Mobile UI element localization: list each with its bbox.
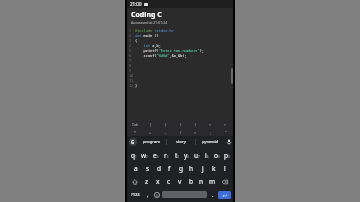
staticText: story <box>176 139 186 145</box>
button[interactable]: ?123 <box>128 188 143 201</box>
staticText: f <box>168 164 171 173</box>
button[interactable]: ) <box>188 120 203 128</box>
staticText: ( <box>180 122 182 127</box>
button[interactable]: pyramid <box>196 136 224 148</box>
button[interactable]: / <box>173 128 188 136</box>
staticText: 5 <box>129 48 132 53</box>
staticText: } <box>135 83 138 88</box>
button[interactable]: story <box>167 136 195 148</box>
staticText: scanf("%d%d",&a,&b); <box>135 53 187 58</box>
staticText: " <box>225 130 227 135</box>
button[interactable]: w2 <box>139 149 150 162</box>
button[interactable]: j <box>197 162 208 175</box>
staticText: / <box>180 130 182 135</box>
button[interactable]: f <box>164 162 175 175</box>
button[interactable]: . <box>208 188 217 201</box>
button[interactable]: Space <box>162 191 207 198</box>
staticText: w2 <box>141 151 148 160</box>
staticText: a <box>134 164 138 173</box>
button[interactable]: t5 <box>172 149 182 162</box>
staticText: program <box>143 139 161 145</box>
staticText: n <box>199 177 204 186</box>
button[interactable]: a <box>130 162 142 175</box>
button[interactable]: , <box>143 188 152 201</box>
button[interactable]: l <box>219 162 230 175</box>
staticText: 21:00 <box>130 1 142 7</box>
button[interactable]: { <box>143 120 158 128</box>
staticText: G <box>131 139 135 145</box>
button[interactable]: Emoji <box>152 188 161 201</box>
staticText: = <box>194 130 197 135</box>
staticText: y6 <box>184 151 190 160</box>
staticText: x <box>156 177 160 186</box>
button[interactable]: z <box>141 175 152 188</box>
staticText: ?123 <box>131 192 140 197</box>
staticText: int a,b; <box>135 43 161 48</box>
staticText: Tab <box>132 122 138 127</box>
staticText: , <box>147 191 149 198</box>
button[interactable]: y6 <box>182 149 192 162</box>
button[interactable]: Backspace <box>218 175 232 188</box>
button[interactable]: e3 <box>150 149 161 162</box>
button[interactable]: * <box>127 128 143 136</box>
button[interactable]: + <box>143 128 158 136</box>
staticText: 12 <box>129 83 134 88</box>
button[interactable]: Enter <box>218 191 231 199</box>
staticText: l <box>224 164 226 173</box>
button[interactable]: - <box>158 128 173 136</box>
button[interactable]: g <box>175 162 186 175</box>
staticText: v <box>178 177 182 186</box>
button[interactable]: b <box>185 175 196 188</box>
button[interactable]: r4 <box>161 149 172 162</box>
button[interactable]: } <box>158 120 173 128</box>
staticText: . <box>212 191 214 198</box>
staticText: * <box>134 130 136 135</box>
staticText: > <box>224 122 227 127</box>
button[interactable]: ( <box>173 120 188 128</box>
button[interactable]: < <box>203 120 218 128</box>
staticText: } <box>165 122 167 127</box>
button[interactable]: n <box>196 175 207 188</box>
staticText: 1 <box>129 28 132 33</box>
staticText: - <box>165 130 167 135</box>
staticText: t5 <box>175 151 180 160</box>
staticText: c <box>167 177 171 186</box>
button[interactable]: p0 <box>222 149 232 162</box>
button[interactable]: h <box>186 162 197 175</box>
staticText: 7 <box>129 58 132 63</box>
staticText: s <box>146 164 150 173</box>
button[interactable]: u7 <box>192 149 202 162</box>
staticText: 11 <box>129 78 134 83</box>
button[interactable]: m <box>207 175 218 188</box>
button[interactable]: Voice input <box>224 136 233 148</box>
staticText: d <box>157 164 161 173</box>
button[interactable]: " <box>218 128 233 136</box>
staticText: u7 <box>194 151 200 160</box>
button[interactable]: s <box>142 162 153 175</box>
button[interactable]: v <box>174 175 185 188</box>
staticText: { <box>150 122 152 127</box>
staticText: j <box>202 164 204 173</box>
staticText: g <box>179 164 183 173</box>
staticText: k <box>212 164 216 173</box>
button[interactable]: d <box>153 162 164 175</box>
button[interactable]: program <box>137 136 166 148</box>
button[interactable]: k <box>208 162 219 175</box>
button[interactable]: x <box>152 175 163 188</box>
button[interactable]: Tab <box>127 120 143 128</box>
staticText: q1 <box>131 151 137 160</box>
button[interactable]: q1 <box>128 149 139 162</box>
button[interactable]: Shift <box>128 175 141 188</box>
button[interactable]: c <box>163 175 174 188</box>
button[interactable]: = <box>188 128 203 136</box>
staticText: o9 <box>214 151 220 160</box>
staticText: 10 <box>129 73 134 78</box>
button[interactable]: i8 <box>202 149 212 162</box>
staticText: b <box>189 177 193 186</box>
button[interactable]: ; <box>203 128 218 136</box>
button[interactable]: o9 <box>212 149 222 162</box>
staticText: Coding C <box>131 10 162 20</box>
button[interactable]: > <box>218 120 233 128</box>
button[interactable]: Google <box>129 138 137 146</box>
staticText: printf("Enter two numbers"); <box>135 48 204 53</box>
